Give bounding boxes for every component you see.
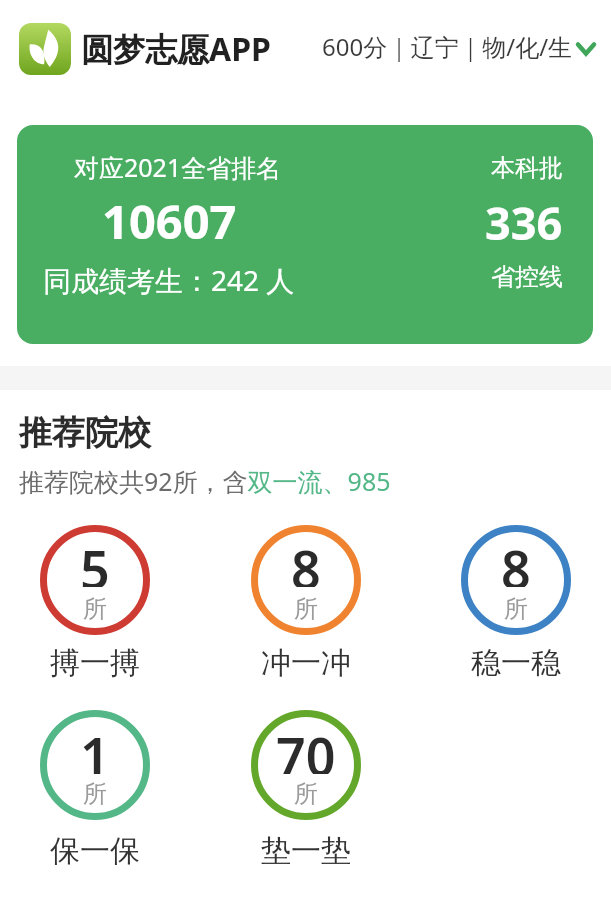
staticText: 所	[83, 779, 107, 805]
staticText: 垫一垫	[261, 832, 351, 868]
staticText: 同成绩考生：242 人	[43, 261, 295, 297]
staticText: 本科批	[491, 153, 563, 183]
staticText: 所	[504, 594, 528, 620]
staticText: 8	[291, 533, 321, 587]
staticText: 保一保	[50, 832, 140, 868]
staticText: 冲一冲	[261, 644, 351, 680]
button[interactable]: 70	[251, 710, 361, 868]
button[interactable]	[19, 23, 71, 75]
staticText: 所	[294, 779, 318, 805]
button[interactable]: 8	[251, 525, 361, 680]
button[interactable]: 对应2021全省排名	[17, 125, 593, 344]
button[interactable]: 8	[461, 525, 571, 680]
staticText: 8	[501, 533, 531, 587]
staticText: 所	[294, 594, 318, 620]
staticText: 圆梦志愿APP	[81, 27, 271, 71]
staticText: 10607	[102, 189, 237, 249]
staticText: 对应2021全省排名	[74, 150, 282, 184]
staticText: 搏一搏	[50, 644, 140, 680]
staticText: 600分｜辽宁｜物/化/生	[322, 30, 573, 63]
staticText: 推荐院校共92所，含双一流、985	[19, 464, 391, 498]
staticText: 所	[83, 594, 107, 620]
staticText: 稳一稳	[471, 644, 561, 680]
staticText: 336	[485, 192, 563, 252]
staticText: 省控线	[491, 262, 563, 292]
button[interactable]: 5	[40, 525, 150, 680]
button[interactable]: 600分｜辽宁｜物/化/生	[322, 32, 596, 65]
staticText: 1	[80, 720, 110, 774]
staticText: 70	[276, 720, 336, 774]
button[interactable]: 1	[40, 710, 150, 868]
staticText: 推荐院校	[19, 412, 151, 454]
staticText: 5	[80, 533, 110, 587]
